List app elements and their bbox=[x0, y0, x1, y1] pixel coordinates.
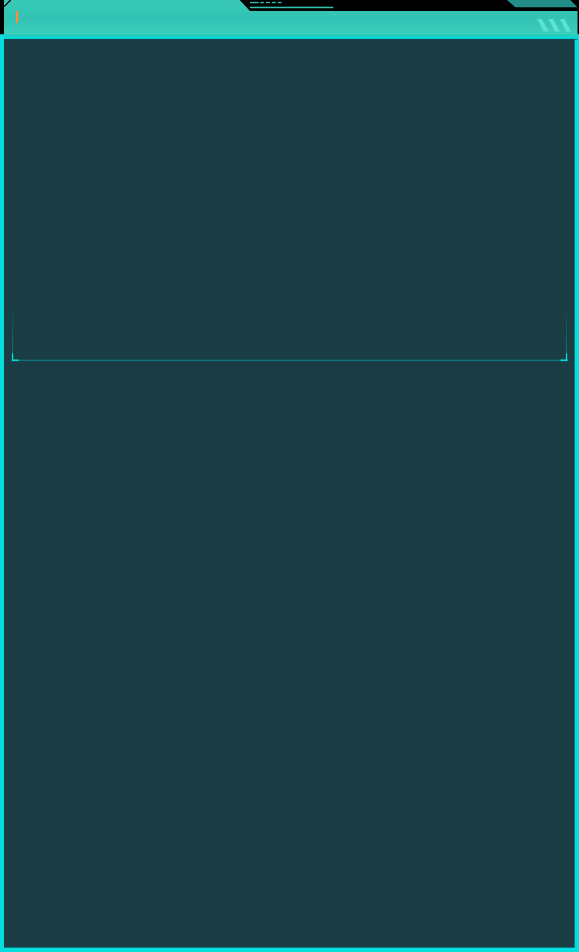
button[interactable]: Top app bar bbox=[4, 0, 578, 34]
button[interactable]: Menu bbox=[8, 6, 28, 28]
button[interactable]: Status bbox=[244, 0, 340, 11]
button[interactable]: More options bbox=[530, 14, 576, 34]
